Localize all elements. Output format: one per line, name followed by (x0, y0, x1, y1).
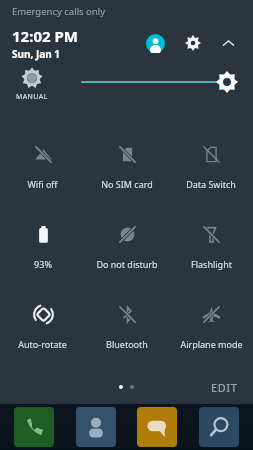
button[interactable]: Settings (178, 28, 208, 58)
button[interactable]: Do not disturb (85, 206, 169, 286)
staticText: Data Switch (186, 178, 236, 190)
button[interactable]: Auto-rotate (0, 286, 85, 366)
button[interactable]: Messages (137, 407, 177, 447)
staticText: Emergency calls only (12, 5, 106, 18)
staticText: 12:02 PM (12, 26, 78, 46)
staticText: Wifi off (27, 178, 58, 190)
button[interactable]: Flashlight (169, 206, 253, 286)
staticText: EDIT (211, 380, 238, 395)
button[interactable]: No SIM card (85, 126, 169, 206)
button[interactable]: Wifi off (0, 126, 85, 206)
button[interactable]: Auto brightness: manual (14, 67, 50, 102)
button[interactable]: EDIT (206, 376, 243, 399)
staticText: MANUAL (16, 92, 48, 102)
button[interactable]: User account (140, 28, 170, 58)
staticText: Flashlight (191, 258, 232, 270)
staticText: Sun, Jan 1 (12, 47, 61, 61)
staticText: Airplane mode (180, 338, 243, 350)
button[interactable]: Brightness (80, 69, 240, 95)
staticText: 93% (34, 258, 52, 270)
button[interactable]: Data Switch (169, 126, 253, 206)
button[interactable]: Contacts (76, 407, 116, 447)
staticText: Auto-rotate (18, 338, 67, 350)
button[interactable]: Bluetooth (85, 286, 169, 366)
staticText: Do not disturb (96, 258, 158, 270)
staticText: No SIM card (101, 178, 153, 190)
button[interactable]: Phone (14, 407, 54, 447)
button[interactable]: Search (199, 407, 239, 447)
button[interactable]: Airplane mode (169, 286, 253, 366)
button[interactable]: 93% (0, 206, 85, 286)
staticText: Bluetooth (106, 338, 148, 350)
button[interactable]: Collapse (213, 28, 243, 58)
